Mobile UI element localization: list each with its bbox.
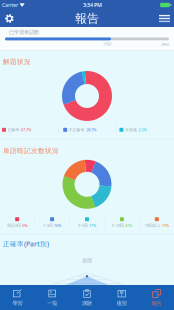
- staticText: 17%: [162, 223, 169, 228]
- staticText: 1~3回: [43, 223, 53, 228]
- staticText: 暗記0回: [7, 223, 21, 228]
- staticText: 5~10回: [112, 223, 124, 228]
- staticText: 2.2%: [138, 127, 146, 132]
- staticText: 全部: [82, 257, 92, 264]
- staticText: 67.7%: [21, 127, 31, 132]
- staticText: 復習: [117, 300, 127, 307]
- staticText: 不正解率: [69, 127, 85, 132]
- staticText: 単語暗記次数状況: [3, 147, 59, 155]
- staticText: 正解率: [7, 127, 19, 132]
- staticText: 未実施: [125, 127, 137, 132]
- staticText: 學習: [12, 300, 22, 307]
- button[interactable]: 復習: [104, 284, 139, 310]
- staticText: 3~5回: [78, 223, 88, 228]
- staticText: 解題状況: [3, 58, 31, 66]
- staticText: 報告: [152, 300, 162, 307]
- button[interactable]: 學習: [0, 284, 35, 310]
- staticText: 17%: [89, 223, 96, 228]
- staticText: 28.7%: [86, 127, 96, 132]
- staticText: 已学習単語数: [9, 29, 39, 36]
- staticText: 6%: [22, 223, 27, 228]
- staticText: 10回以上: [145, 223, 161, 228]
- staticText: 2842: [161, 41, 169, 47]
- staticText: 正確率(Part別): [3, 239, 49, 248]
- staticText: 測験: [82, 300, 92, 307]
- button[interactable]: Settings: [0, 11, 19, 26]
- button[interactable]: 測験: [70, 284, 104, 310]
- button[interactable]: Menu: [154, 10, 174, 26]
- staticText: 報告: [75, 11, 99, 26]
- staticText: 一覧: [47, 300, 57, 307]
- staticText: Carrier: [2, 1, 18, 9]
- button[interactable]: 報告: [139, 284, 174, 310]
- staticText: 41%: [125, 223, 132, 228]
- staticText: 1750: [103, 41, 111, 47]
- button[interactable]: 一覧: [35, 284, 70, 310]
- staticText: 16%: [54, 223, 61, 228]
- staticText: 3:34 PM: [83, 1, 102, 9]
